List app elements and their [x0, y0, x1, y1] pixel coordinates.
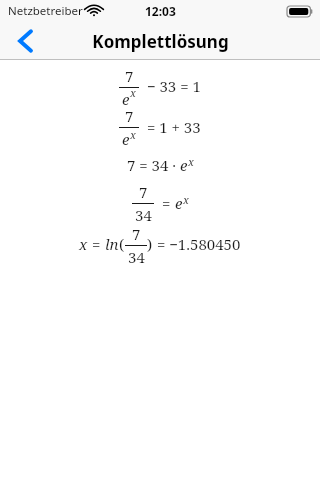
staticText: =	[158, 193, 175, 213]
staticText: x	[79, 234, 88, 254]
staticText: )	[147, 234, 153, 254]
staticText: e	[122, 129, 130, 148]
button[interactable]: Back	[0, 22, 51, 60]
staticText: − 33 = 1	[143, 76, 201, 96]
staticText: =	[88, 234, 105, 254]
staticText: 7	[132, 224, 141, 244]
staticText: x	[188, 154, 194, 169]
staticText: x	[130, 127, 136, 142]
staticText: (	[119, 234, 125, 254]
staticText: Netzbetreiber	[8, 3, 83, 19]
staticText: = −1.580450	[153, 234, 241, 254]
staticText: Komplettlösung	[92, 30, 229, 53]
staticText: 7	[139, 182, 148, 202]
staticText: 34	[135, 205, 152, 224]
staticText: x	[130, 85, 136, 100]
staticText: 34	[128, 247, 145, 264]
staticText: e	[175, 193, 183, 213]
staticText: 7 = 34 ·	[127, 155, 180, 175]
staticText: ln	[105, 234, 119, 254]
staticText: = 1 + 33	[143, 117, 201, 137]
staticText: 12:03	[145, 3, 176, 19]
staticText: x	[183, 192, 189, 207]
staticText: 7	[125, 66, 134, 86]
staticText: e	[180, 155, 188, 175]
staticText: 7	[125, 106, 134, 126]
staticText: e	[122, 89, 130, 106]
